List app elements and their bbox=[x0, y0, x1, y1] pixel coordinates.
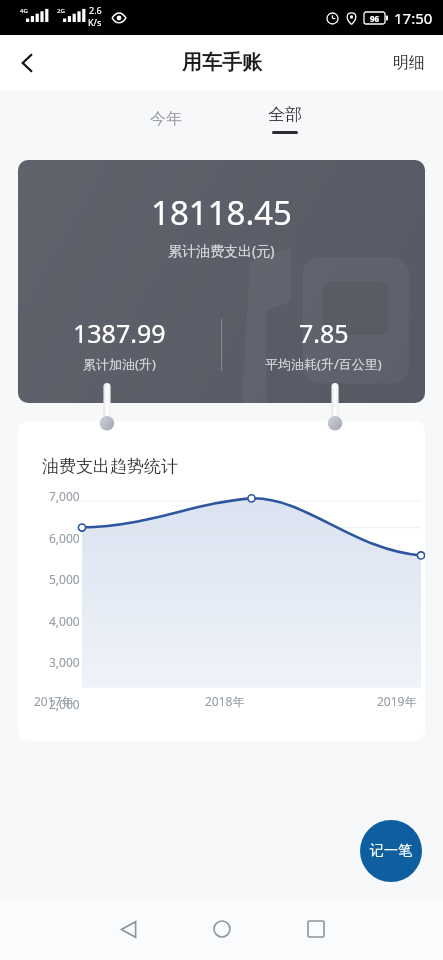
staticText: 累计油费支出(元) bbox=[168, 241, 275, 260]
button[interactable]: Recents bbox=[285, 898, 347, 960]
staticText: 2019年 bbox=[377, 693, 417, 709]
staticText: 6,000 bbox=[49, 530, 80, 546]
staticText: 5,000 bbox=[49, 571, 80, 587]
button[interactable]: 油费支出趋势统计 bbox=[18, 421, 425, 741]
button[interactable]: Back bbox=[0, 35, 55, 90]
button[interactable]: Home bbox=[191, 898, 253, 960]
staticText: 全部 bbox=[268, 104, 302, 125]
staticText: 平均油耗(升/百公里) bbox=[265, 355, 382, 373]
staticText: 18118.45 bbox=[151, 190, 292, 235]
staticText: 2.6 bbox=[89, 4, 102, 16]
staticText: 2017年 bbox=[34, 693, 74, 709]
staticText: 记一笔 bbox=[370, 842, 412, 860]
staticText: 今年 bbox=[150, 109, 182, 129]
button[interactable]: 今年 bbox=[120, 101, 212, 137]
staticText: 用车手账 bbox=[182, 50, 262, 75]
staticText: 17:50 bbox=[394, 8, 433, 28]
staticText: 明细 bbox=[393, 53, 425, 73]
staticText: 1387.99 bbox=[73, 316, 166, 350]
staticText: 7,000 bbox=[49, 488, 80, 504]
staticText: 2018年 bbox=[205, 693, 245, 709]
staticText: 累计加油(升) bbox=[83, 355, 156, 373]
button[interactable]: 18118.45 bbox=[18, 160, 425, 403]
staticText: 4,000 bbox=[49, 613, 80, 629]
staticText: 96 bbox=[370, 13, 380, 24]
staticText: 2,000 bbox=[49, 696, 80, 712]
staticText: 3,000 bbox=[49, 654, 80, 670]
button[interactable]: 全部 bbox=[246, 100, 324, 138]
button[interactable]: 记一笔 bbox=[360, 820, 422, 882]
staticText: 2G bbox=[57, 7, 65, 15]
button[interactable]: 明细 bbox=[375, 41, 443, 85]
button[interactable]: Back bbox=[97, 898, 159, 960]
staticText: 4G bbox=[20, 7, 28, 15]
staticText: 油费支出趋势统计 bbox=[42, 456, 178, 477]
staticText: K/s bbox=[88, 16, 102, 28]
staticText: 7.85 bbox=[299, 316, 349, 350]
